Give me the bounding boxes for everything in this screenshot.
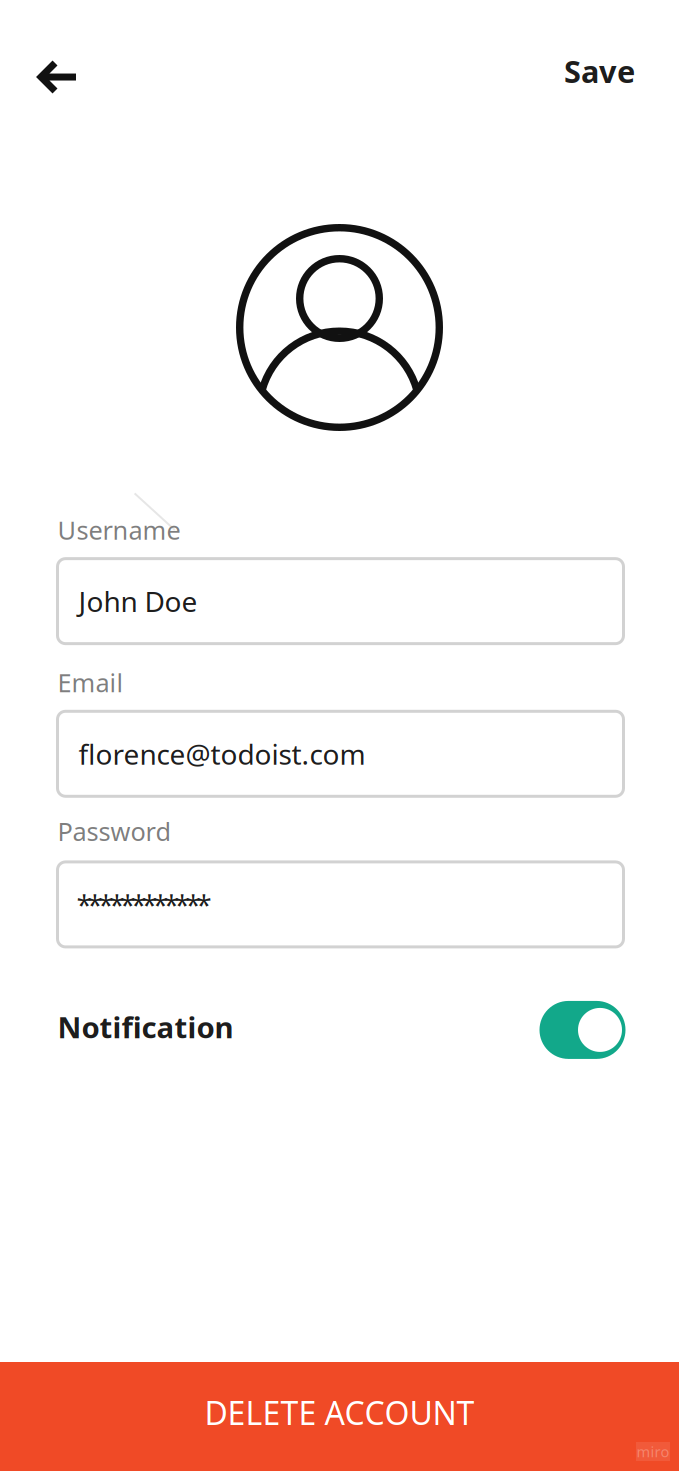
staticText: florence@todoist.com [78, 735, 365, 772]
staticText: Password [57, 814, 171, 848]
staticText: Username [57, 513, 180, 547]
staticText: * [153, 886, 168, 923]
staticText: * [185, 886, 200, 923]
button[interactable]: Back [0, 44, 101, 110]
staticText: DELETE ACCOUNT [204, 1391, 474, 1434]
staticText: John Doe [78, 583, 197, 620]
staticText: * [196, 886, 211, 923]
staticText: * [109, 886, 124, 923]
button[interactable]: DELETE ACCOUNT [0, 1362, 679, 1471]
staticText: * [120, 886, 135, 923]
staticText: * [142, 886, 157, 923]
staticText: * [98, 886, 113, 923]
staticText: * [175, 886, 190, 923]
staticText: * [76, 886, 91, 923]
staticText: * [164, 886, 179, 923]
staticText: * [87, 886, 102, 923]
staticText: miro [636, 1442, 669, 1461]
staticText: Notification [57, 1007, 233, 1046]
staticText: Save [564, 51, 635, 91]
button[interactable]: Save [540, 41, 679, 113]
button[interactable]: Notification [57, 998, 623, 1056]
staticText: * [131, 886, 146, 923]
staticText: Email [57, 666, 123, 699]
